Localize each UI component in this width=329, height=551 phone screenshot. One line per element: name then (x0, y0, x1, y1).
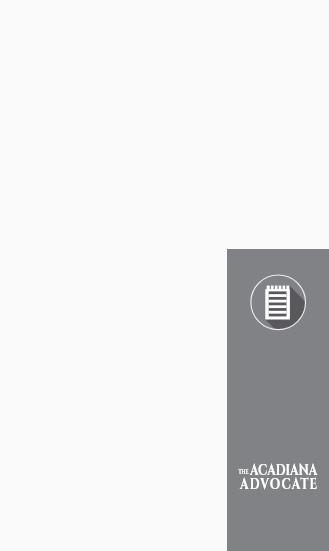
other: The Acadiana Advocate (245, 269, 313, 337)
staticText: ACADIANA (250, 459, 318, 481)
staticText: ADVOCATE (240, 473, 318, 495)
staticText: THE (238, 468, 250, 477)
